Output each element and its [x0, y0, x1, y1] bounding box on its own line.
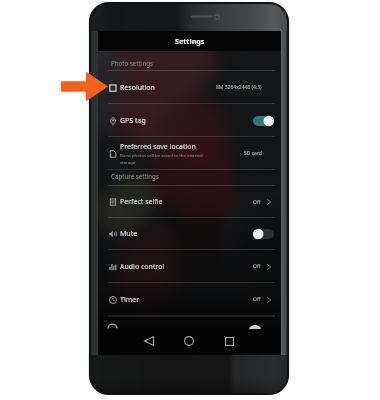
button[interactable]: Mute — [98, 218, 281, 250]
button[interactable]: GPS tag — [98, 104, 281, 137]
button[interactable]: Preferred save location — [98, 137, 281, 170]
staticText: Settings — [175, 36, 205, 46]
staticText: Perfect selfie — [120, 197, 163, 207]
button[interactable]: Timer — [98, 283, 281, 316]
staticText: Off — [253, 199, 261, 206]
staticText: Resolution — [120, 83, 155, 93]
button[interactable]: Back — [140, 332, 158, 350]
staticText: Off — [253, 263, 261, 270]
staticText: Mute — [120, 229, 138, 239]
button[interactable]: Recent apps — [220, 332, 238, 350]
staticText: SD card — [244, 150, 262, 157]
staticText: Burst photos will be saved to the intern… — [120, 152, 203, 166]
other: Pointer arrow — [61, 71, 108, 102]
button[interactable]: Perfect selfie — [98, 186, 281, 218]
staticText: Capture settings — [111, 172, 159, 180]
staticText: Timer — [120, 295, 140, 305]
staticText: Off — [253, 296, 261, 303]
button[interactable]: Audio control — [98, 250, 281, 283]
staticText: Preferred save location — [120, 142, 196, 152]
staticText: Photo settings — [111, 59, 154, 67]
button[interactable]: Resolution — [98, 71, 281, 104]
staticText: Audio control — [120, 262, 165, 272]
button[interactable]: Home — [180, 332, 198, 350]
staticText: GPS tag — [120, 116, 146, 126]
staticText: 8M 3264x2448 (4:3) — [216, 84, 262, 91]
